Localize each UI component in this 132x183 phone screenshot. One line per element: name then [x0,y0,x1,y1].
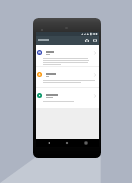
button[interactable]: Camera [83,36,90,45]
button[interactable] [36,45,99,66]
button[interactable]: New Gallery [37,36,50,45]
button[interactable]: Back [45,139,53,147]
button[interactable] [36,88,99,108]
button[interactable]: Settings [91,36,98,45]
button[interactable]: Recents [82,139,90,147]
button[interactable] [36,67,99,87]
button[interactable]: Home [63,139,71,147]
